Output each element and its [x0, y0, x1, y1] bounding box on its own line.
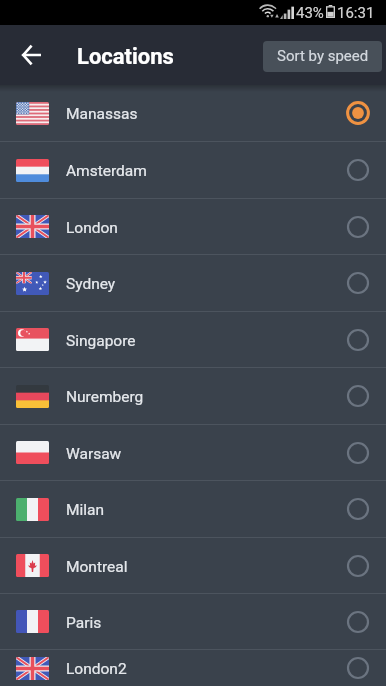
button[interactable]: Back: [9, 33, 53, 77]
staticText: Nuremberg: [66, 388, 144, 406]
staticText: Sydney: [66, 275, 116, 293]
staticText: London: [66, 219, 118, 237]
staticText: Paris: [66, 614, 102, 632]
button[interactable]: Sort by speed: [263, 41, 382, 72]
staticText: Locations: [77, 44, 174, 70]
staticText: London2: [66, 660, 127, 678]
button[interactable]: Singapore: [0, 312, 386, 367]
staticText: Amsterdam: [66, 162, 147, 180]
button[interactable]: Warsaw: [0, 425, 386, 480]
button[interactable]: Manassas: [0, 85, 386, 141]
button[interactable]: Paris: [0, 594, 386, 649]
button[interactable]: Amsterdam: [0, 142, 386, 198]
staticText: Warsaw: [66, 445, 122, 463]
staticText: Manassas: [66, 105, 138, 123]
staticText: Montreal: [66, 558, 128, 576]
button[interactable]: London: [0, 199, 386, 254]
button[interactable]: Montreal: [0, 538, 386, 593]
staticText: Sort by speed: [277, 47, 369, 65]
button[interactable]: Milan: [0, 481, 386, 537]
button[interactable]: London2: [0, 650, 386, 686]
staticText: 16:31: [337, 4, 375, 22]
staticText: Milan: [66, 501, 105, 519]
button[interactable]: Sydney: [0, 255, 386, 311]
staticText: 43%: [296, 4, 324, 22]
button[interactable]: Nuremberg: [0, 368, 386, 424]
staticText: Singapore: [66, 332, 136, 350]
